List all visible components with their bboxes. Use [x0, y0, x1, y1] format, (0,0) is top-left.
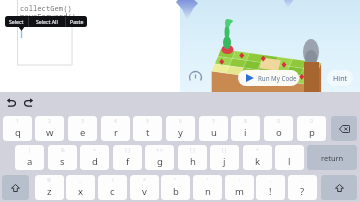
- staticText: Hint: [333, 73, 348, 83]
- staticText: y: [178, 126, 183, 139]
- staticText: c: [110, 185, 115, 198]
- staticText: 5: [146, 118, 149, 125]
- button[interactable]: backspace: [331, 116, 357, 141]
- staticText: r: [114, 126, 118, 139]
- button[interactable]: Paste: [66, 16, 87, 27]
- button[interactable]: Select: [5, 16, 28, 27]
- staticText: ': [207, 177, 209, 184]
- staticText: *: [143, 177, 146, 184]
- button[interactable]: 1: [3, 116, 32, 141]
- button[interactable]: 5: [133, 116, 162, 141]
- staticText: t: [146, 126, 150, 139]
- button[interactable]: /: [98, 175, 127, 200]
- button[interactable]: Select All: [29, 16, 65, 27]
- button[interactable]: 2: [35, 116, 64, 141]
- staticText: collectGem(): [20, 3, 72, 13]
- staticText: p: [309, 126, 315, 139]
- staticText: !: [269, 185, 272, 198]
- button[interactable]: *: [130, 175, 159, 200]
- button[interactable]: .: [288, 175, 317, 200]
- staticText: 4: [114, 118, 117, 125]
- staticText: :: [239, 177, 241, 184]
- staticText: 0: [310, 118, 313, 125]
- staticText: 8: [244, 118, 247, 125]
- staticText: 9: [277, 118, 280, 125]
- staticText: .: [302, 177, 304, 184]
- staticText: Run My Code: [258, 74, 297, 82]
- button[interactable]: 0: [297, 116, 326, 141]
- button[interactable]: 4: [101, 116, 130, 141]
- staticText: d: [92, 155, 98, 168]
- staticText: g: [157, 155, 163, 168]
- button[interactable]: 6: [166, 116, 195, 141]
- staticText: o: [276, 126, 282, 139]
- staticText: /: [112, 177, 114, 184]
- staticText: ( ): [222, 147, 227, 154]
- staticText: Paste: [70, 18, 84, 25]
- staticText: 6: [179, 118, 182, 125]
- staticText: n: [205, 185, 211, 198]
- button[interactable]: :: [225, 175, 254, 200]
- button[interactable]: shift: [321, 175, 357, 200]
- button[interactable]: =: [80, 145, 109, 170]
- staticText: &: [61, 147, 65, 154]
- staticText: q: [15, 126, 21, 139]
- staticText: %: [47, 177, 52, 184]
- staticText: +: [256, 147, 259, 154]
- staticText: ?: [300, 185, 305, 198]
- button[interactable]: ,: [256, 175, 285, 200]
- staticText: 3: [81, 118, 84, 125]
- staticText: ,: [270, 177, 272, 184]
- staticText: _: [79, 177, 82, 184]
- button[interactable]: return: [307, 145, 357, 170]
- staticText: 2: [48, 118, 51, 125]
- staticText: moveForward(): [20, 11, 77, 21]
- staticText: j: [223, 155, 226, 168]
- button[interactable]: Speed: [187, 69, 204, 86]
- button[interactable]: 9: [264, 116, 293, 141]
- staticText: z: [47, 185, 52, 198]
- staticText: l: [288, 155, 291, 168]
- staticText: { }: [125, 147, 131, 154]
- button[interactable]: { }: [113, 145, 142, 170]
- button[interactable]: +: [243, 145, 272, 170]
- staticText: w: [46, 126, 54, 139]
- button[interactable]: Undo: [5, 96, 19, 110]
- staticText: [ ]: [190, 147, 195, 154]
- staticText: v: [142, 185, 147, 198]
- staticText: k: [255, 155, 261, 168]
- button[interactable]: &: [48, 145, 77, 170]
- button[interactable]: 3: [68, 116, 97, 141]
- button[interactable]: %: [35, 175, 64, 200]
- button[interactable]: _: [66, 175, 95, 200]
- staticText: a: [27, 155, 33, 168]
- staticText: h: [190, 155, 196, 168]
- button[interactable]: shift: [2, 175, 29, 200]
- staticText: x: [78, 185, 84, 198]
- staticText: Select All: [36, 18, 58, 25]
- button[interactable]: Redo: [21, 96, 35, 110]
- staticText: u: [211, 126, 217, 139]
- button[interactable]: |: [15, 145, 44, 170]
- button[interactable]: 7: [199, 116, 228, 141]
- button[interactable]: 8: [231, 116, 260, 141]
- staticText: 7: [212, 118, 215, 125]
- button[interactable]: < >: [145, 145, 174, 170]
- staticText: -: [289, 147, 291, 154]
- staticText: =: [93, 147, 96, 154]
- button[interactable]: [ ]: [178, 145, 207, 170]
- button[interactable]: ( ): [210, 145, 239, 170]
- staticText: m: [235, 185, 244, 198]
- button[interactable]: Run My Code: [238, 70, 299, 86]
- staticText: 1: [16, 118, 19, 125]
- button[interactable]: ": [161, 175, 190, 200]
- button[interactable]: -: [275, 145, 304, 170]
- staticText: ": [174, 177, 177, 184]
- staticText: Select: [9, 18, 24, 25]
- button[interactable]: ': [193, 175, 222, 200]
- staticText: b: [173, 185, 179, 198]
- staticText: < >: [156, 147, 164, 154]
- button[interactable]: Hint: [327, 70, 353, 86]
- staticText: e: [80, 126, 86, 139]
- staticText: |: [28, 147, 31, 154]
